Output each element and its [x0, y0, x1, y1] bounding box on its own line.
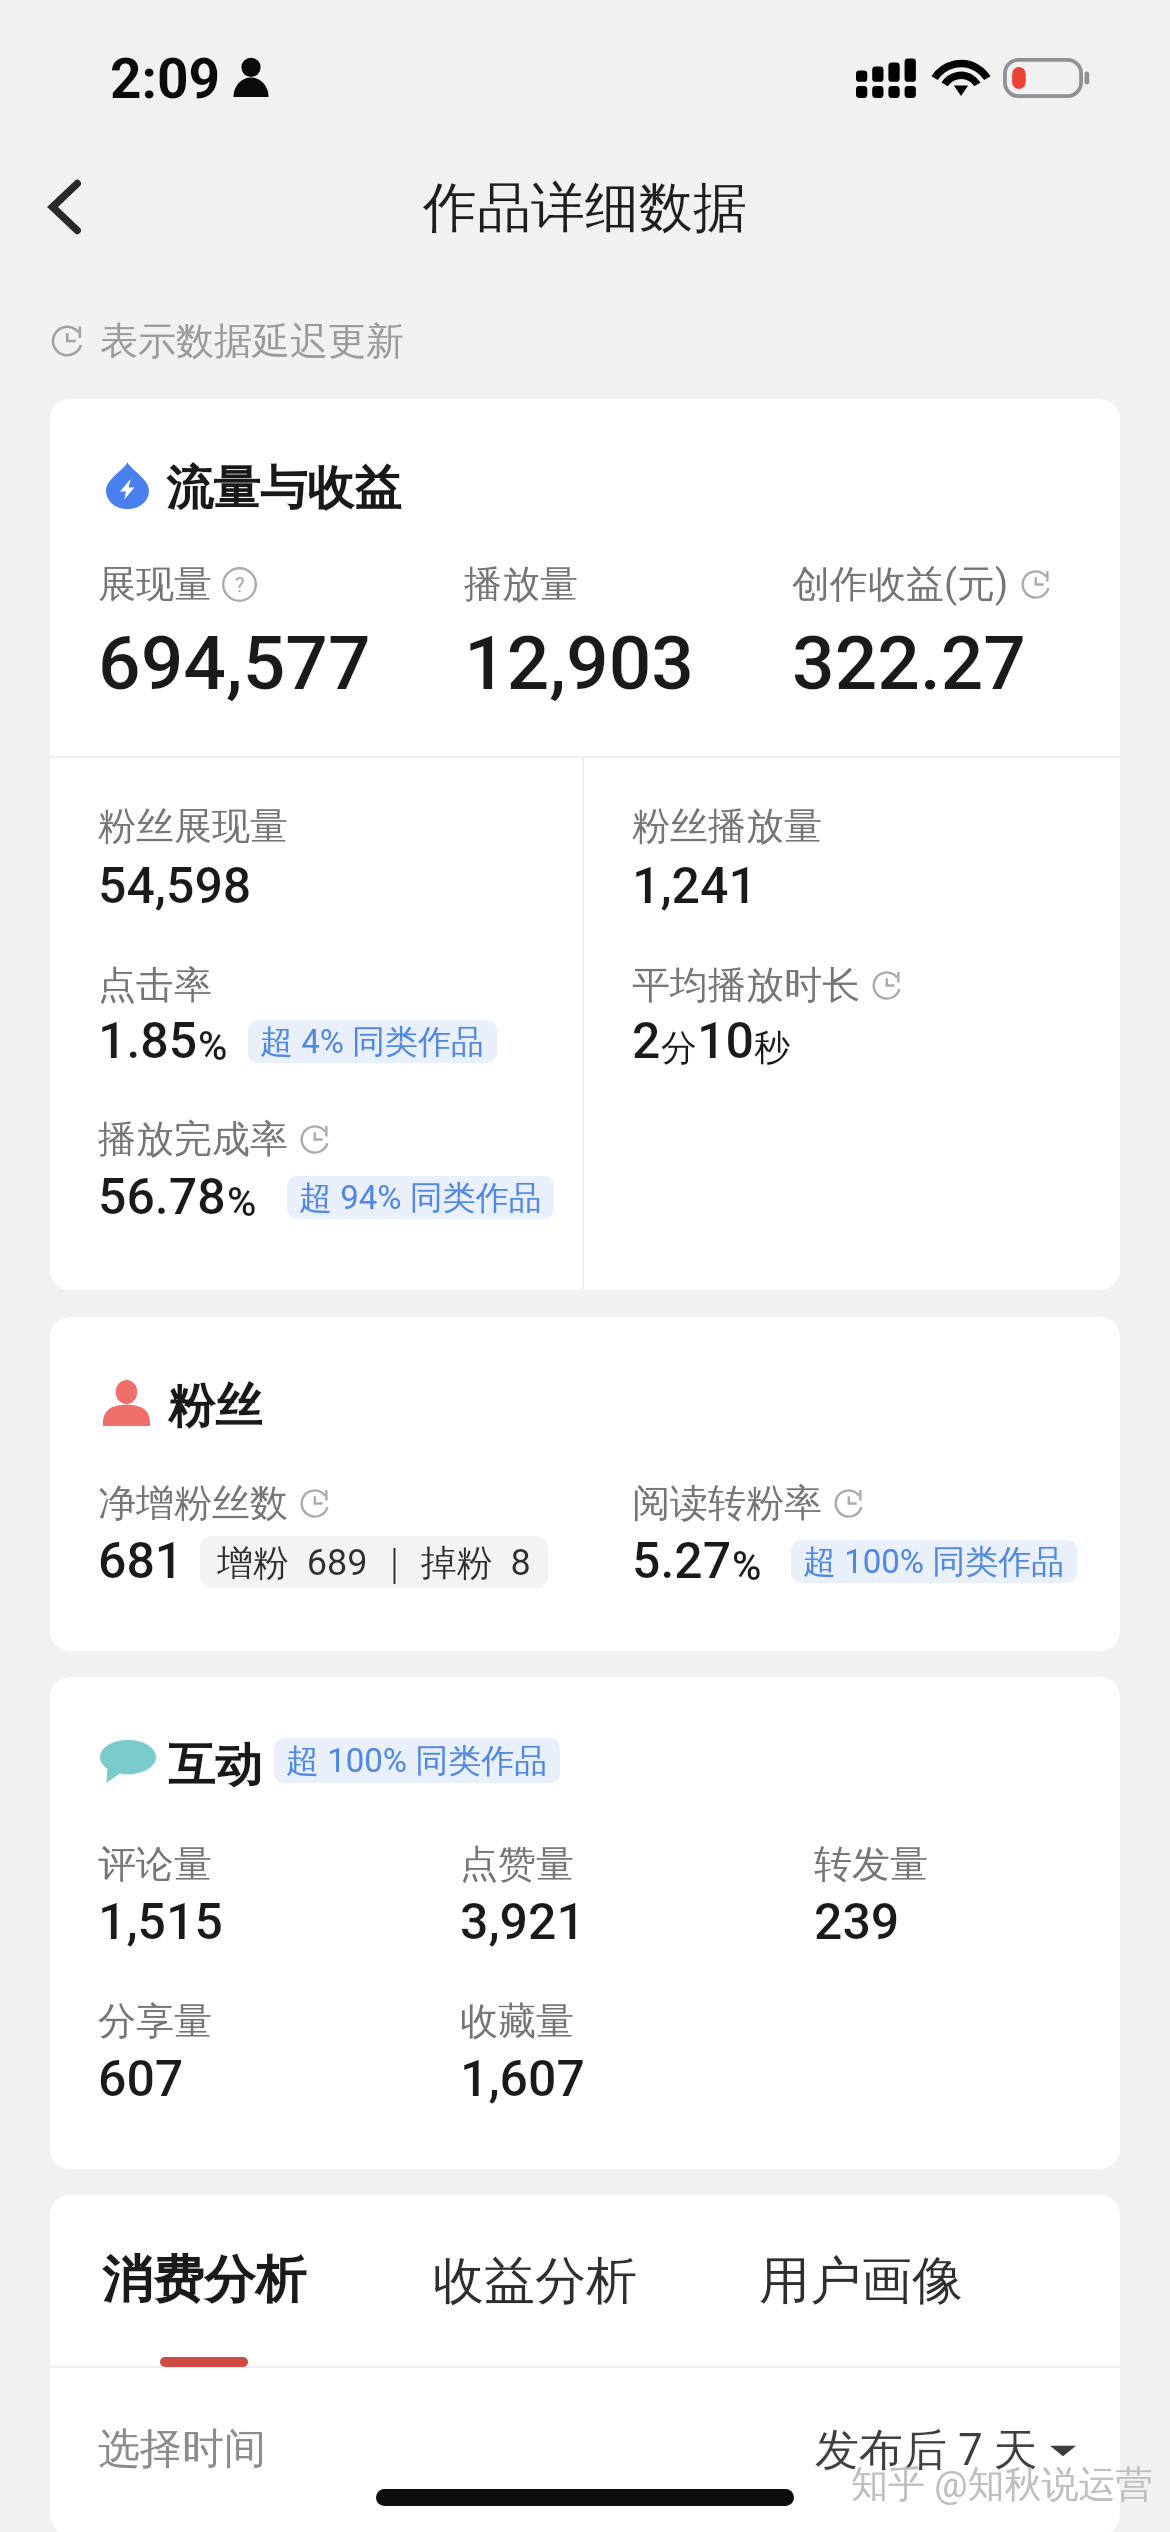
staticText: 超 100% 同类作品: [803, 1541, 1065, 1583]
staticText: 净增粉丝数: [98, 1479, 288, 1527]
staticText: 选择时间: [98, 2423, 266, 2476]
staticText: %: [198, 1023, 228, 1070]
staticText: 表示数据延迟更新: [100, 317, 404, 365]
staticText: 2:09: [110, 47, 221, 111]
staticText: 12,903: [464, 619, 694, 707]
staticText: 粉丝播放量: [632, 802, 822, 850]
staticText: 创作收益(元): [792, 560, 1009, 608]
staticText: 322.27: [792, 619, 1026, 707]
button[interactable]: 用户画像: [729, 2217, 989, 2333]
staticText: 用户画像: [759, 2249, 963, 2313]
button[interactable]: Back: [24, 171, 100, 243]
staticText: 收藏量: [460, 1997, 574, 2045]
staticText: 增粉 689 ｜ 掉粉 8: [217, 1540, 531, 1585]
staticText: 681: [98, 1532, 184, 1591]
staticText: 5.27: [632, 1532, 732, 1591]
staticText: 1.85: [98, 1012, 198, 1071]
staticText: 超 94% 同类作品: [299, 1177, 542, 1219]
staticText: 56.78: [98, 1168, 226, 1227]
staticText: 知乎 @知秋说运营: [851, 2461, 1153, 2508]
button[interactable]: 发布后 7 天: [750, 2417, 1076, 2483]
staticText: 10: [697, 1012, 754, 1071]
staticText: 分: [661, 1025, 697, 1070]
staticText: 收益分析: [433, 2249, 637, 2313]
button[interactable]: 流量与收益: [50, 399, 1120, 1290]
staticText: 评论量: [98, 1840, 212, 1888]
staticText: 播放量: [464, 560, 578, 608]
staticText: 粉丝展现量: [98, 802, 288, 850]
staticText: 1,241: [632, 857, 757, 916]
staticText: 作品详细数据: [423, 174, 747, 242]
button[interactable]: 互动: [50, 1677, 1120, 2169]
staticText: 消费分析: [102, 2248, 306, 2312]
staticText: 转发量: [814, 1840, 928, 1888]
staticText: 超 100% 同类作品: [286, 1740, 548, 1782]
staticText: 54,598: [98, 857, 252, 916]
staticText: 粉丝: [168, 1377, 262, 1436]
staticText: %: [227, 1179, 257, 1226]
staticText: 1,515: [98, 1893, 223, 1952]
staticText: 694,577: [98, 619, 371, 707]
staticText: 分享量: [98, 1997, 212, 2045]
staticText: %: [732, 1543, 762, 1590]
staticText: 239: [814, 1893, 900, 1952]
staticText: 点击率: [98, 961, 212, 1009]
staticText: 607: [98, 2050, 184, 2109]
staticText: 发布后 7 天: [815, 2423, 1038, 2478]
staticText: 阅读转粉率: [632, 1479, 822, 1527]
staticText: 平均播放时长: [632, 961, 860, 1009]
staticText: 1,607: [460, 2050, 585, 2109]
staticText: 超 4% 同类作品: [260, 1021, 485, 1063]
staticText: 点赞量: [460, 1840, 574, 1888]
staticText: 互动: [168, 1736, 262, 1795]
staticText: 播放完成率: [98, 1115, 288, 1163]
staticText: 展现量: [98, 560, 212, 608]
button[interactable]: 粉丝: [50, 1317, 1120, 1651]
button[interactable]: 消费分析: [72, 2217, 332, 2333]
staticText: 秒: [754, 1025, 790, 1070]
staticText: 2: [632, 1012, 661, 1071]
button[interactable]: 收益分析: [403, 2217, 663, 2333]
staticText: ?: [235, 573, 245, 597]
staticText: 流量与收益: [166, 459, 401, 518]
staticText: 3,921: [460, 1893, 585, 1952]
